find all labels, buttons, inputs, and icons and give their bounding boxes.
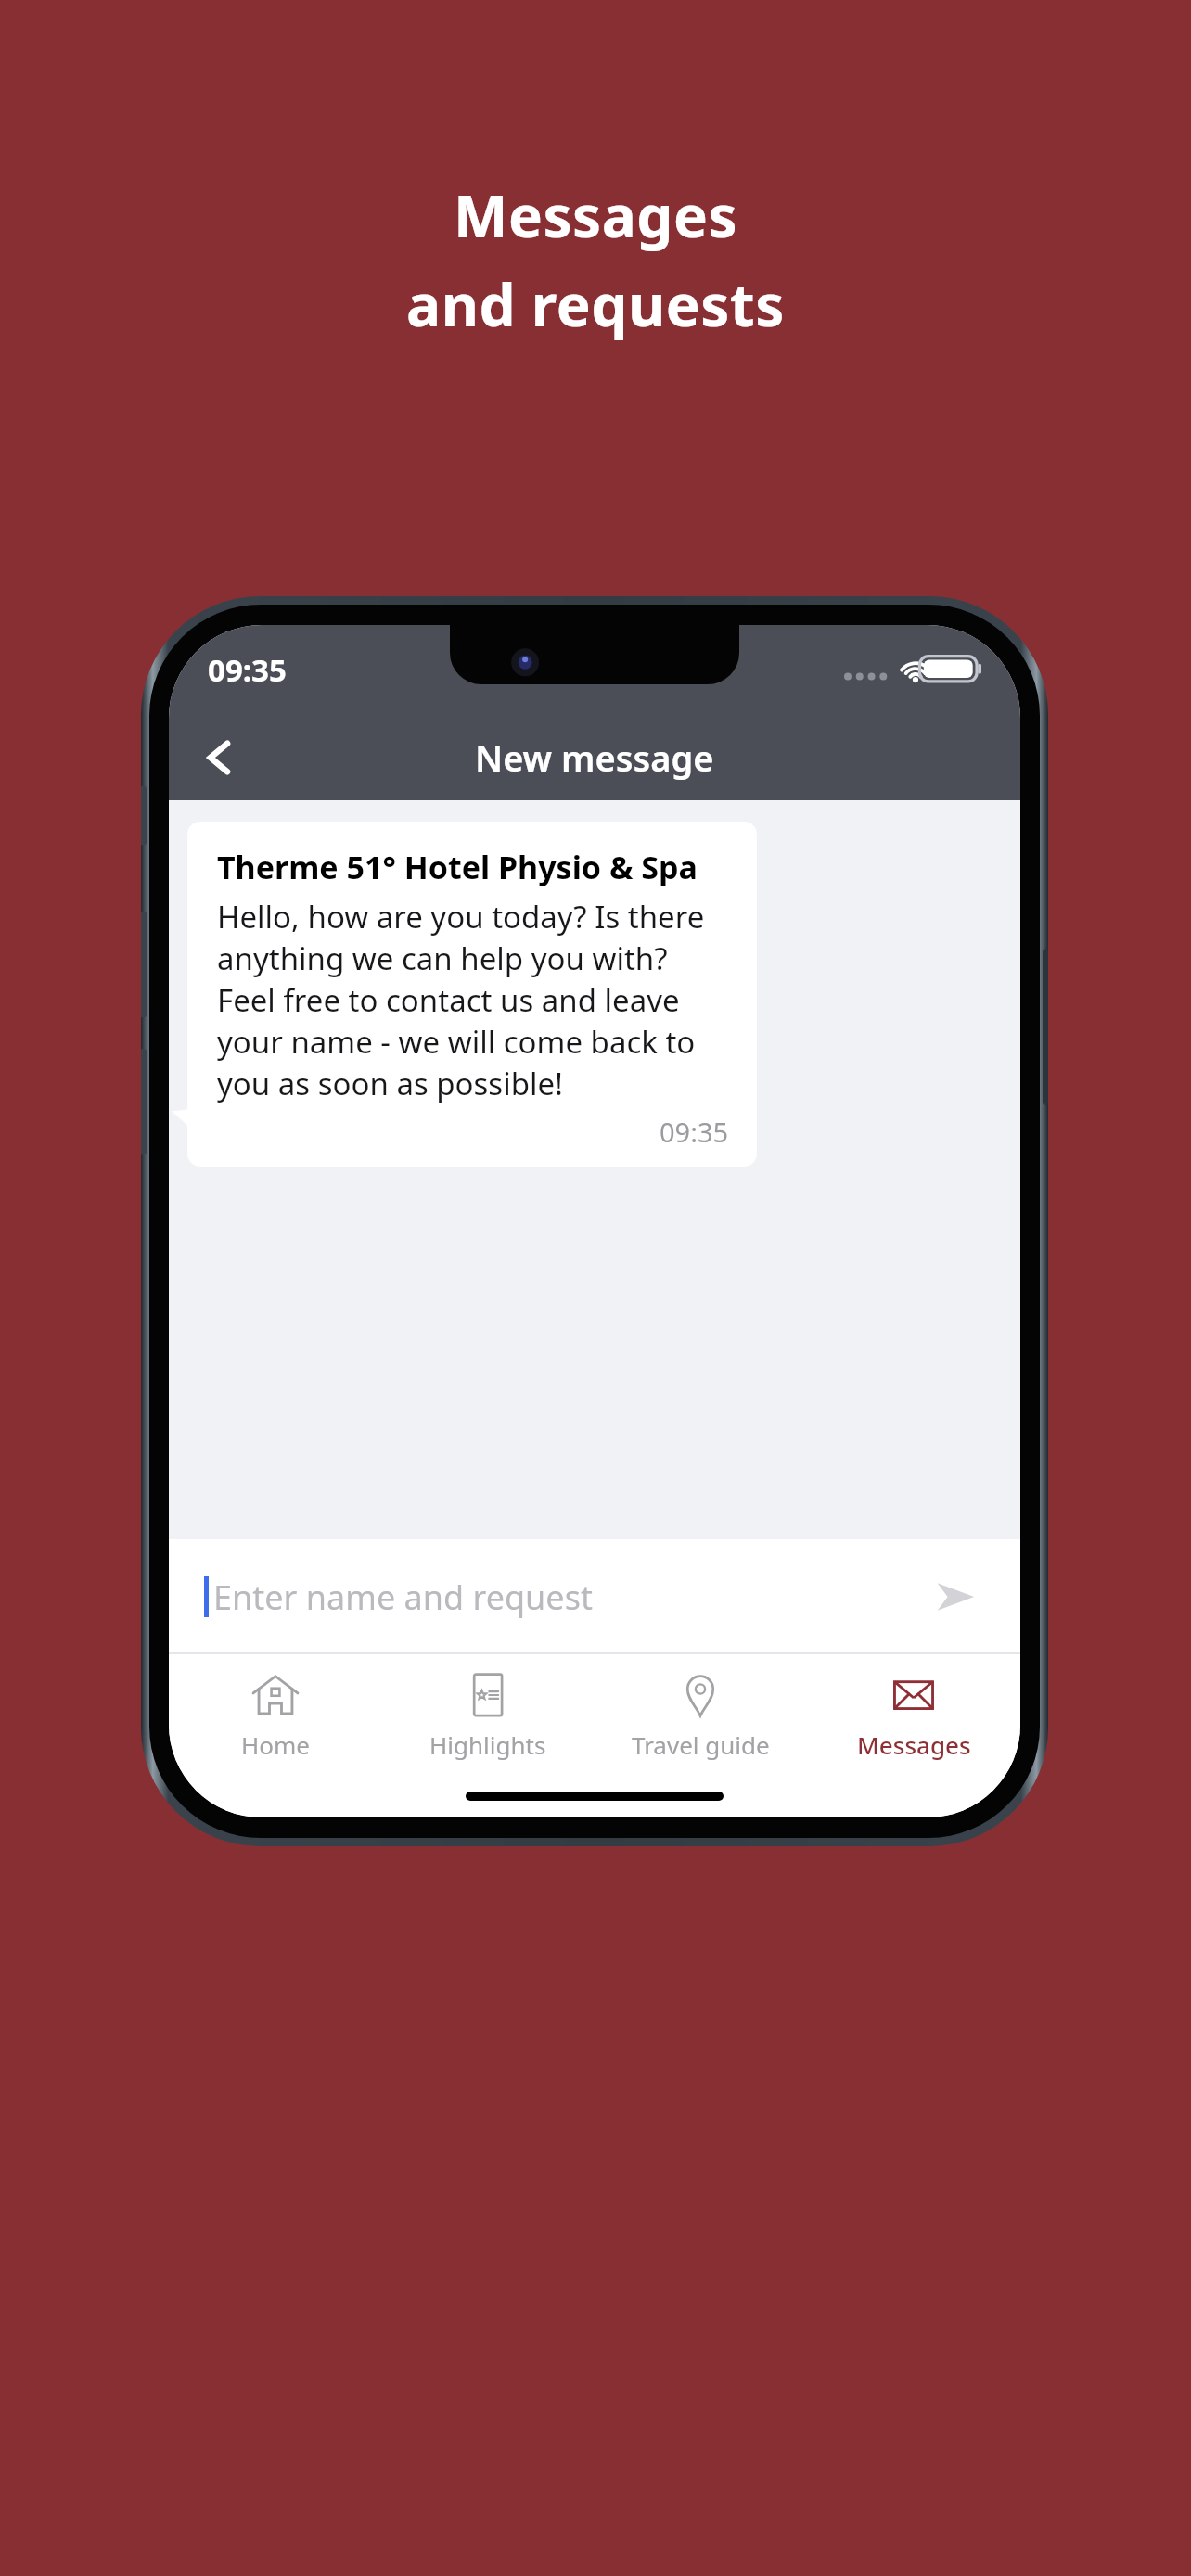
button[interactable]: Send (928, 1569, 983, 1625)
staticText: New message (475, 733, 714, 782)
button[interactable]: Travel guide (594, 1654, 807, 1777)
staticText: 09:35 (208, 649, 287, 691)
staticText: Messages (454, 176, 738, 254)
button[interactable]: Enter name and request (169, 1539, 1020, 1654)
staticText: Travel guide (632, 1728, 770, 1761)
staticText: Therme 51° Hotel Physio & Spa (217, 846, 698, 888)
staticText: and requests (406, 265, 785, 343)
button[interactable]: Highlights (381, 1654, 594, 1777)
staticText: Enter name and request (213, 1575, 593, 1620)
button[interactable]: Back (169, 714, 269, 800)
staticText: Hello, how are you today? Is there anyth… (217, 896, 729, 1104)
staticText: Home (241, 1728, 310, 1761)
button[interactable]: Therme 51° Hotel Physio & Spa (187, 822, 757, 1167)
staticText: 09:35 (660, 1114, 729, 1150)
button[interactable]: Home (169, 1654, 381, 1777)
staticText: Messages (857, 1728, 971, 1761)
staticText: Highlights (429, 1728, 546, 1761)
button[interactable]: Messages (807, 1654, 1020, 1777)
